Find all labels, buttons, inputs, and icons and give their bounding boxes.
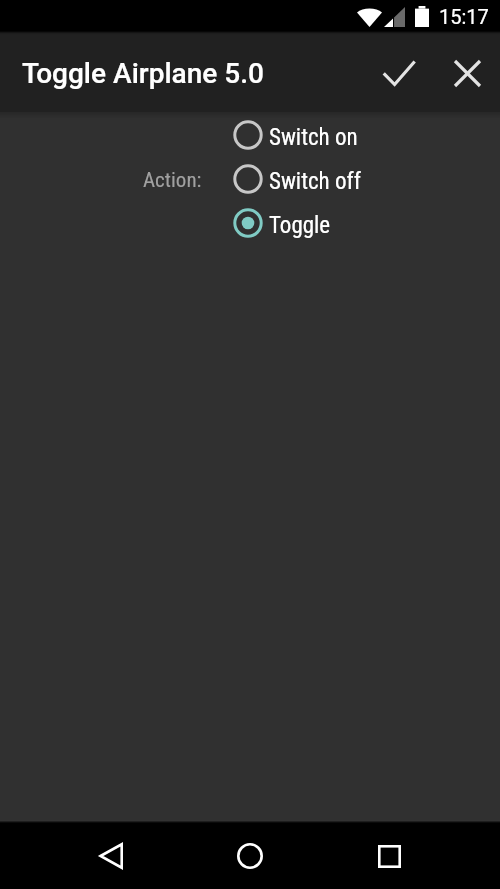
staticText: 15:17 xyxy=(439,5,489,28)
staticText: Action: xyxy=(143,168,202,193)
staticText: Toggle xyxy=(269,212,331,239)
button[interactable]: Recents xyxy=(349,823,429,889)
button[interactable]: Home xyxy=(210,823,290,889)
button[interactable]: Toggle xyxy=(227,201,331,245)
staticText: Switch on xyxy=(269,124,358,151)
button[interactable]: Switch on xyxy=(227,113,358,157)
button[interactable]: Close xyxy=(434,34,500,112)
button[interactable]: Done xyxy=(362,34,434,112)
button[interactable]: Switch off xyxy=(227,157,362,201)
button[interactable]: Back xyxy=(71,823,151,889)
staticText: Toggle Airplane 5.0 xyxy=(22,57,264,90)
staticText: Switch off xyxy=(269,168,362,195)
